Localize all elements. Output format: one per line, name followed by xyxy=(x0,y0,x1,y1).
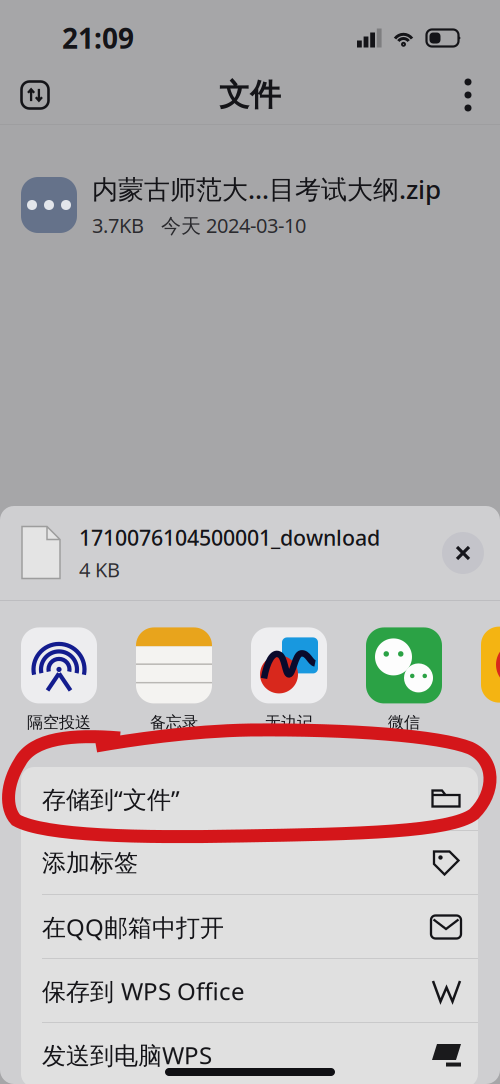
staticText: 存储到“文件” xyxy=(42,783,180,815)
staticText: 今天 2024-03-10 xyxy=(161,212,306,239)
button[interactable]: 添加标签 xyxy=(21,831,478,895)
button[interactable]: 内蒙古师范大…目考试大纲.zip xyxy=(0,125,500,259)
button[interactable]: 保存到 WPS Office xyxy=(21,959,478,1023)
staticText: 4 KB xyxy=(79,556,120,583)
button[interactable]: 无边记 xyxy=(251,629,327,739)
staticText: 保存到 WPS Office xyxy=(42,975,245,1007)
staticText: 内蒙古师范大…目考试大纲.zip xyxy=(92,171,441,207)
button[interactable]: Close xyxy=(437,527,489,579)
staticText: 微信 xyxy=(388,712,420,733)
button[interactable]: Sort xyxy=(8,68,62,122)
button[interactable]: 存储到“文件” xyxy=(21,767,478,831)
staticText: 添加标签 xyxy=(42,848,138,878)
staticText: 3.7KB xyxy=(92,212,144,239)
staticText: 文件 xyxy=(219,76,281,114)
staticText: 21:09 xyxy=(62,19,134,57)
staticText: 发送到电脑WPS xyxy=(42,1039,212,1071)
staticText: 1710076104500001_download xyxy=(79,523,380,552)
button[interactable]: 发送到电脑WPS xyxy=(21,1023,478,1084)
button[interactable]: 隔空投送 xyxy=(21,629,97,739)
staticText: 隔空投送 xyxy=(27,712,91,733)
button[interactable]: More xyxy=(441,68,495,122)
button[interactable] xyxy=(481,629,500,739)
button[interactable]: 备忘录 xyxy=(136,629,212,739)
button[interactable]: 在QQ邮箱中打开 xyxy=(21,895,478,959)
staticText: 无边记 xyxy=(265,712,313,733)
staticText: 在QQ邮箱中打开 xyxy=(42,911,224,943)
button[interactable]: 微信 xyxy=(366,629,442,739)
staticText: 备忘录 xyxy=(150,712,198,733)
